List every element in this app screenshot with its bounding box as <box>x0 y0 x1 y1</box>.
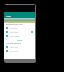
button[interactable]: Item one <box>4 26 35 30</box>
staticText: More <box>17 39 22 42</box>
staticText: Item five <box>10 50 18 53</box>
button[interactable]: More <box>4 38 35 42</box>
button[interactable]: Item five <box>4 49 35 53</box>
staticText: Item three <box>10 35 20 38</box>
button[interactable]: Item three <box>4 34 35 38</box>
button[interactable]: Item four <box>4 45 35 49</box>
staticText: Title <box>6 14 11 17</box>
button[interactable]: Item two <box>4 30 35 34</box>
staticText: Another section <box>6 42 21 45</box>
staticText: Item two <box>10 31 18 34</box>
staticText: Item one <box>10 27 19 30</box>
staticText: Heading text here <box>6 23 23 26</box>
staticText: Item four <box>10 46 19 49</box>
